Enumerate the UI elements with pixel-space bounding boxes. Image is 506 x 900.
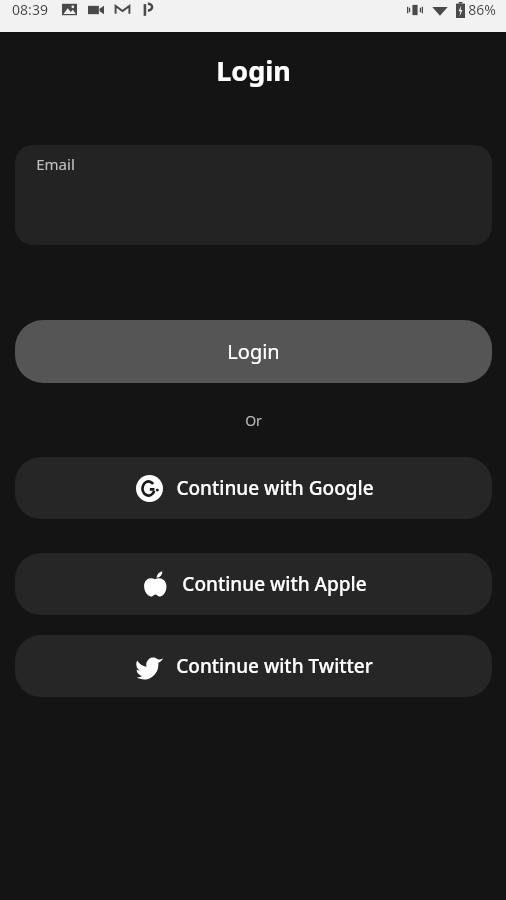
staticText: Email xyxy=(36,154,75,174)
staticText: Login xyxy=(227,338,280,365)
staticText: Or xyxy=(245,411,262,430)
staticText: Continue with Google xyxy=(176,475,374,501)
staticText: 86% xyxy=(468,0,496,19)
button[interactable]: Email xyxy=(15,145,492,245)
staticText: 08:39 xyxy=(12,0,48,19)
button[interactable]: Login xyxy=(15,320,492,383)
staticText: Continue with Apple xyxy=(182,571,367,597)
staticText: Continue with Twitter xyxy=(176,653,373,679)
staticText: Login xyxy=(216,52,291,89)
button[interactable]: Continue with Apple xyxy=(15,553,492,615)
button[interactable]: Continue with Twitter xyxy=(15,635,492,697)
button[interactable]: Continue with Google xyxy=(15,457,492,519)
